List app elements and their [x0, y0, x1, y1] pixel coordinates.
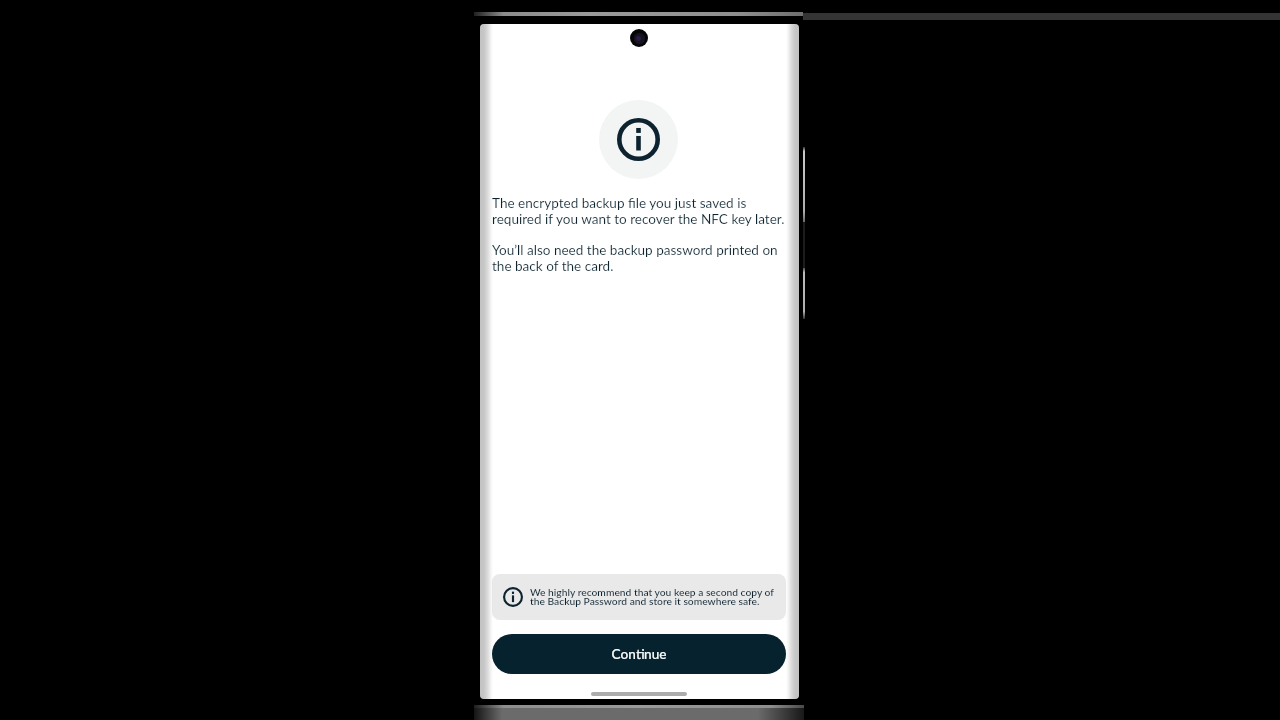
staticText: You’ll also need the backup password pri…	[492, 242, 787, 274]
button[interactable]: Information	[492, 574, 786, 620]
staticText: We highly recommend that you keep a seco…	[530, 586, 778, 608]
staticText: Continue	[611, 646, 667, 662]
staticText: The encrypted backup file you just saved…	[492, 195, 787, 227]
button[interactable]: Continue	[492, 634, 786, 674]
other: Information	[503, 587, 523, 607]
other: Information	[617, 118, 660, 161]
